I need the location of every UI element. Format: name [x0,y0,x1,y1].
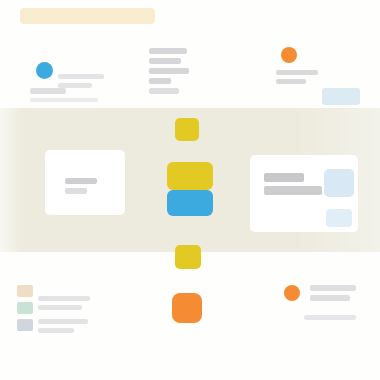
button[interactable]: Notification [284,285,300,301]
button[interactable]: Profile [36,62,53,79]
button[interactable]: Action [172,293,202,323]
button[interactable]: Step one [175,118,199,141]
button[interactable] [250,155,358,232]
button[interactable] [45,150,125,215]
button[interactable]: Step three [167,190,213,216]
button[interactable]: Step two [167,162,213,190]
button[interactable]: Alert [281,47,297,63]
button[interactable]: Step four [175,245,201,269]
